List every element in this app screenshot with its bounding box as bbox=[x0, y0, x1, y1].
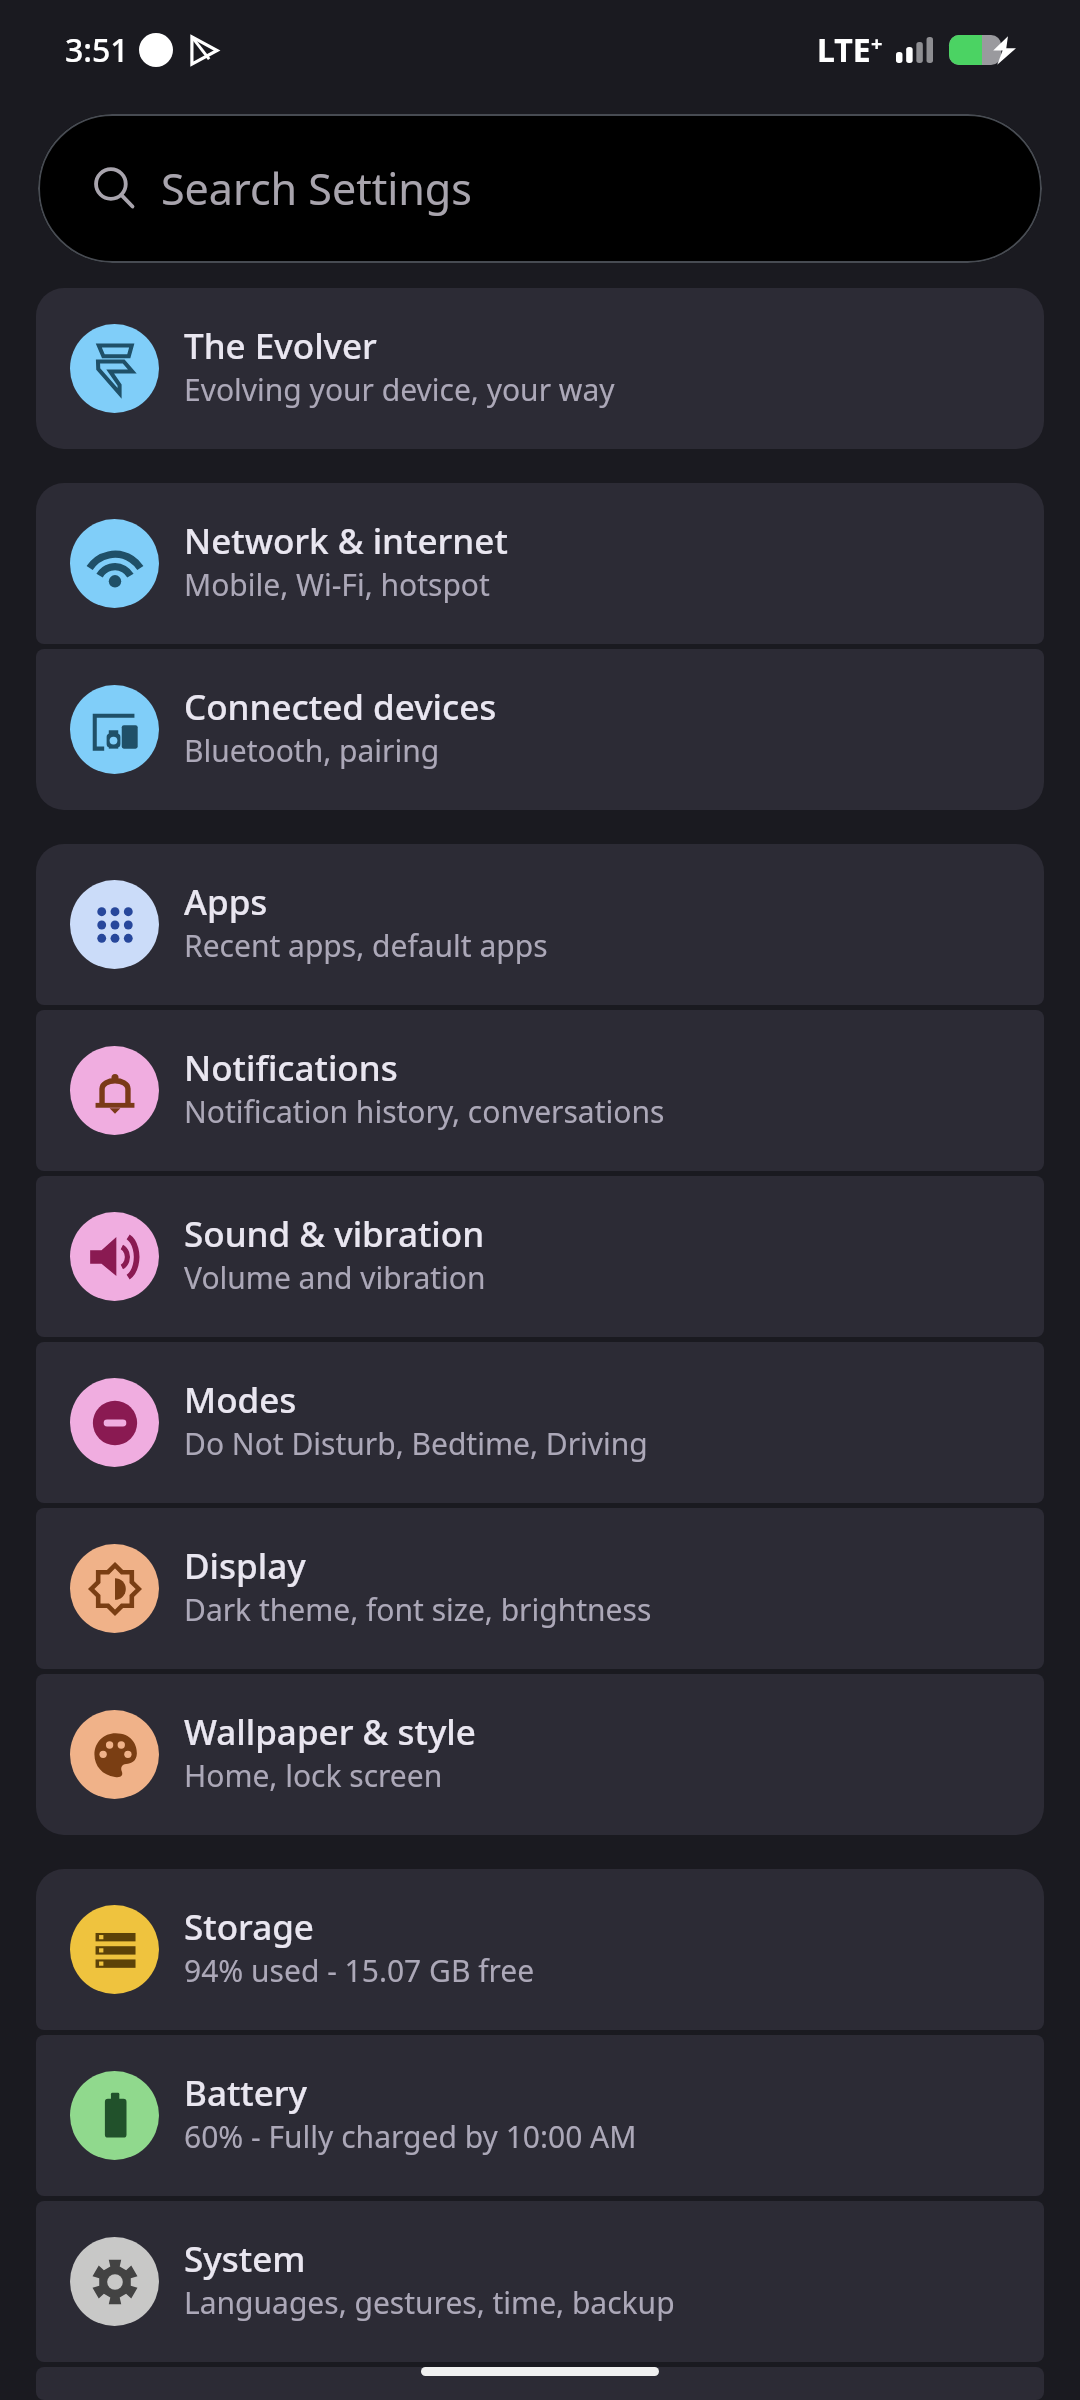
staticText: Apps bbox=[184, 878, 268, 926]
staticText: The Evolver bbox=[184, 322, 377, 370]
staticText: Modes bbox=[184, 1376, 297, 1424]
staticText: Recent apps, default apps bbox=[184, 925, 548, 966]
staticText: + bbox=[871, 30, 883, 57]
button[interactable]: Battery bbox=[36, 2035, 1044, 2196]
staticText: Volume and vibration bbox=[184, 1257, 486, 1298]
button[interactable]: Search Settings bbox=[38, 114, 1042, 263]
button[interactable]: Connected devices bbox=[36, 649, 1044, 810]
button[interactable]: The Evolver bbox=[36, 288, 1044, 449]
staticText: Display bbox=[184, 1542, 306, 1590]
button[interactable]: Display bbox=[36, 1508, 1044, 1669]
button[interactable]: System bbox=[36, 2201, 1044, 2362]
staticText: 60% - Fully charged by 10:00 AM bbox=[184, 2116, 637, 2157]
staticText: Languages, gestures, time, backup bbox=[184, 2282, 675, 2323]
staticText: Notification history, conversations bbox=[184, 1091, 665, 1132]
staticText: 3:51 bbox=[65, 28, 129, 72]
button[interactable]: Notifications bbox=[36, 1010, 1044, 1171]
button[interactable]: Wallpaper & style bbox=[36, 1674, 1044, 1835]
staticText: Storage bbox=[184, 1903, 314, 1951]
button[interactable]: Sound & vibration bbox=[36, 1176, 1044, 1337]
staticText: Dark theme, font size, brightness bbox=[184, 1589, 652, 1630]
button[interactable]: Apps bbox=[36, 844, 1044, 1005]
staticText: Connected devices bbox=[184, 683, 497, 731]
staticText: Search Settings bbox=[161, 159, 472, 218]
staticText: Mobile, Wi-Fi, hotspot bbox=[184, 564, 490, 605]
button[interactable]: Storage bbox=[36, 1869, 1044, 2030]
staticText: Notifications bbox=[184, 1044, 398, 1092]
staticText: Do Not Disturb, Bedtime, Driving bbox=[184, 1423, 648, 1464]
staticText: Evolving your device, your way bbox=[184, 369, 615, 410]
staticText: LTE bbox=[817, 28, 871, 72]
staticText: Network & internet bbox=[184, 517, 508, 565]
staticText: Wallpaper & style bbox=[184, 1708, 476, 1756]
staticText: Bluetooth, pairing bbox=[184, 730, 440, 771]
staticText: System bbox=[184, 2235, 306, 2283]
staticText: Sound & vibration bbox=[184, 1210, 485, 1258]
button[interactable]: Network & internet bbox=[36, 483, 1044, 644]
staticText: Home, lock screen bbox=[184, 1755, 443, 1796]
staticText: 94% used - 15.07 GB free bbox=[184, 1950, 535, 1991]
staticText: Battery bbox=[184, 2069, 308, 2117]
button[interactable]: Modes bbox=[36, 1342, 1044, 1503]
